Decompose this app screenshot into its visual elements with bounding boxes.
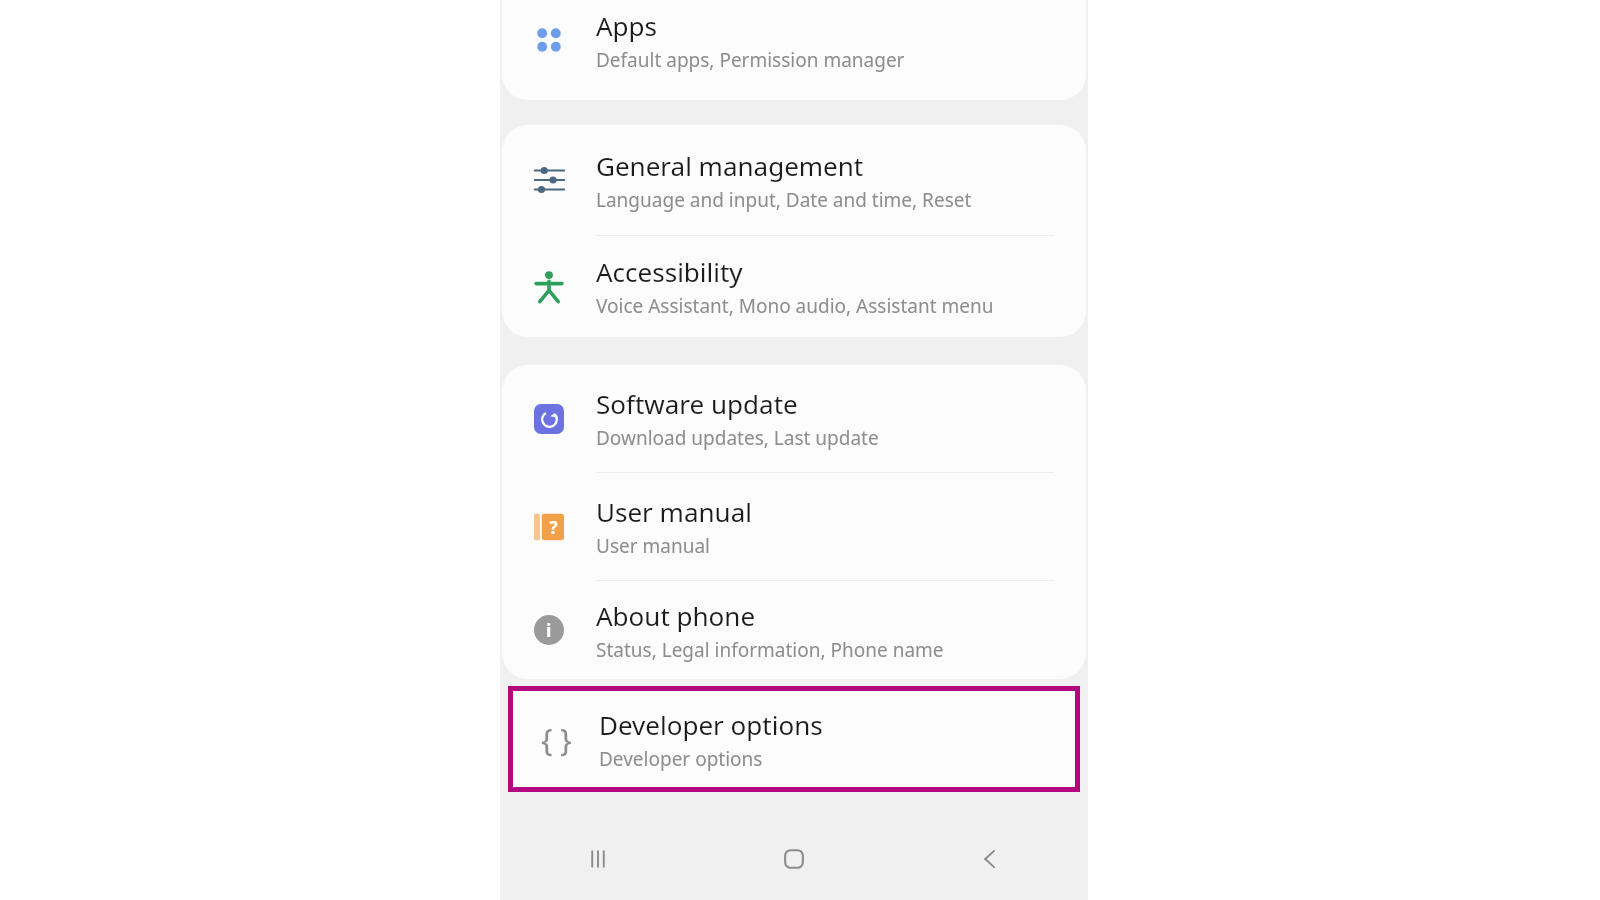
staticText: Download updates, Last update [596,425,879,451]
staticText: User manual [596,494,752,529]
staticText: Accessibility [596,254,743,289]
staticText: Developer options [599,746,763,772]
staticText: Status, Legal information, Phone name [596,637,944,663]
button[interactable]: { } [513,691,1075,787]
button[interactable]: Home [696,817,892,900]
staticText: Software update [596,386,798,421]
staticText: Developer options [599,707,823,742]
button[interactable]: Back [892,817,1088,900]
button[interactable]: i [502,581,1086,679]
staticText: Voice Assistant, Mono audio, Assistant m… [596,293,994,319]
staticText: { } [541,719,572,760]
button[interactable]: ? [502,473,1086,580]
staticText: i [546,618,552,643]
staticText: User manual [596,533,710,559]
button[interactable]: Accessibility [502,236,1086,337]
staticText: General management [596,148,864,183]
staticText: Default apps, Permission manager [596,47,905,73]
button[interactable]: Recents [500,817,696,900]
button[interactable]: Software update [502,365,1086,472]
staticText: ? [549,516,558,539]
button[interactable]: Apps [502,0,1086,90]
staticText: About phone [596,598,756,633]
button[interactable]: General management [502,125,1086,235]
staticText: Language and input, Date and time, Reset [596,187,972,213]
staticText: Apps [596,8,658,43]
